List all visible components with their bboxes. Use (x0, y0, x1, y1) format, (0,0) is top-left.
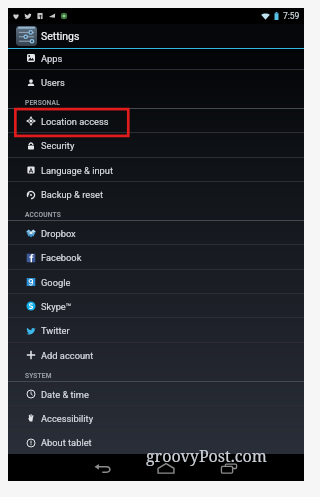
staticText: Settings (41, 30, 80, 42)
staticText: Accessibility (41, 413, 94, 424)
staticText: Date & time (41, 389, 89, 400)
staticText: Language & input (41, 165, 113, 176)
button[interactable]: Home (151, 456, 180, 481)
staticText: Twitter (41, 325, 70, 336)
staticText: Location access (41, 116, 109, 127)
button[interactable]: About tablet (8, 430, 304, 454)
button[interactable]: Twitter (8, 318, 304, 343)
button[interactable]: Language & input (8, 158, 304, 182)
button[interactable]: Accessibility (8, 406, 304, 430)
staticText: SYSTEM (25, 372, 52, 380)
staticText: Dropbox (41, 228, 76, 239)
button[interactable]: Google (8, 270, 304, 294)
staticText: 7:59 (283, 11, 300, 21)
button[interactable]: Date & time (8, 382, 304, 406)
staticText: Backup & reset (41, 189, 103, 200)
button[interactable]: Backup & reset (8, 182, 304, 207)
button[interactable]: Facebook (8, 245, 304, 270)
button[interactable]: Skype™ (8, 294, 304, 318)
button[interactable]: Location access (8, 109, 304, 133)
staticText: Security (41, 140, 75, 151)
button[interactable]: Apps (8, 49, 304, 70)
button[interactable]: Add account (8, 343, 304, 367)
staticText: PERSONAL (25, 99, 60, 107)
staticText: Google (41, 277, 71, 288)
staticText: About tablet (41, 437, 92, 448)
button[interactable]: Dropbox (8, 221, 304, 245)
button[interactable]: Users (8, 70, 304, 95)
staticText: Facebook (41, 252, 82, 263)
staticText: groovyPost.com (146, 445, 267, 467)
staticText: ACCOUNTS (25, 211, 61, 219)
staticText: Add account (41, 350, 94, 361)
staticText: Apps (41, 53, 63, 64)
staticText: Users (41, 77, 65, 88)
button[interactable]: Security (8, 133, 304, 158)
button[interactable]: Recent apps (214, 456, 243, 481)
staticText: Skype™ (41, 301, 72, 312)
button[interactable]: Settings (8, 24, 304, 48)
button[interactable]: Back (88, 456, 117, 481)
